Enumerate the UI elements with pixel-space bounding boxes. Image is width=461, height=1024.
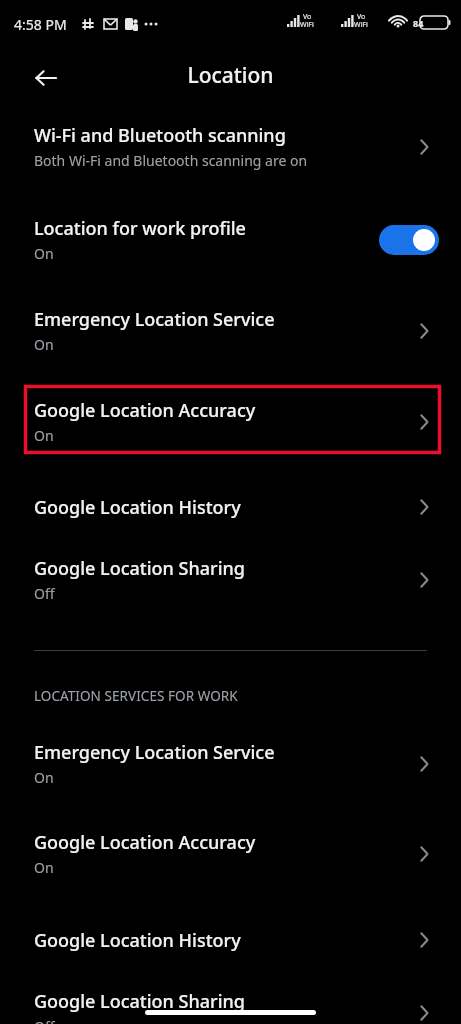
staticText: WiFi [300, 20, 314, 30]
staticText: LOCATION SERVICES FOR WORK [34, 687, 238, 705]
staticText: Google Location Accuracy [34, 398, 256, 423]
staticText: Off [34, 1017, 55, 1024]
staticText: Google Location History [34, 495, 241, 520]
other: Open [413, 134, 439, 160]
staticText: Location for work profile [34, 216, 246, 241]
staticText: Google Location Sharing [34, 556, 245, 581]
staticText: Vo [357, 12, 366, 22]
other: Open [413, 751, 439, 777]
button[interactable]: Location for work profile toggle [379, 225, 439, 255]
staticText: WiFi [354, 20, 368, 30]
button[interactable]: Google Location History [0, 484, 461, 530]
staticText: Wi-Fi and Bluetooth scanning [34, 123, 286, 148]
staticText: Both Wi-Fi and Bluetooth scanning are on [34, 151, 308, 170]
staticText: On [34, 426, 54, 445]
staticText: On [34, 768, 54, 787]
staticText: 4:58 PM [14, 15, 67, 34]
other: Open [413, 318, 439, 344]
button[interactable]: Wi-Fi and Bluetooth scanning [0, 112, 461, 181]
button[interactable]: Google Location Sharing [0, 545, 461, 614]
staticText: 84 [413, 17, 424, 29]
staticText: Emergency Location Service [34, 740, 275, 765]
button[interactable]: Google Location Accuracy [0, 819, 461, 888]
staticText: Vo [303, 12, 312, 22]
button[interactable]: Google Location Sharing [0, 978, 461, 1024]
button[interactable]: Emergency Location Service [0, 296, 461, 365]
staticText: Google Location Accuracy [34, 830, 256, 855]
staticText: On [34, 335, 54, 354]
other: Open [413, 567, 439, 593]
staticText: On [34, 244, 54, 263]
button[interactable]: Location for work profile [0, 205, 461, 274]
other: Open [413, 1000, 439, 1024]
button[interactable]: Google Location Accuracy [0, 387, 461, 456]
staticText: Emergency Location Service [34, 307, 275, 332]
staticText: Location [187, 61, 274, 90]
staticText: Google Location History [34, 928, 241, 953]
other: Open [413, 841, 439, 867]
button[interactable]: Emergency Location Service [0, 729, 461, 798]
staticText: Off [34, 584, 55, 603]
button[interactable]: Google Location History [0, 917, 461, 963]
other: Open [413, 927, 439, 953]
staticText: Google Location Sharing [34, 989, 245, 1014]
other: Open [413, 409, 439, 435]
staticText: On [34, 858, 54, 877]
button[interactable]: Back [26, 58, 66, 98]
other: Open [413, 494, 439, 520]
